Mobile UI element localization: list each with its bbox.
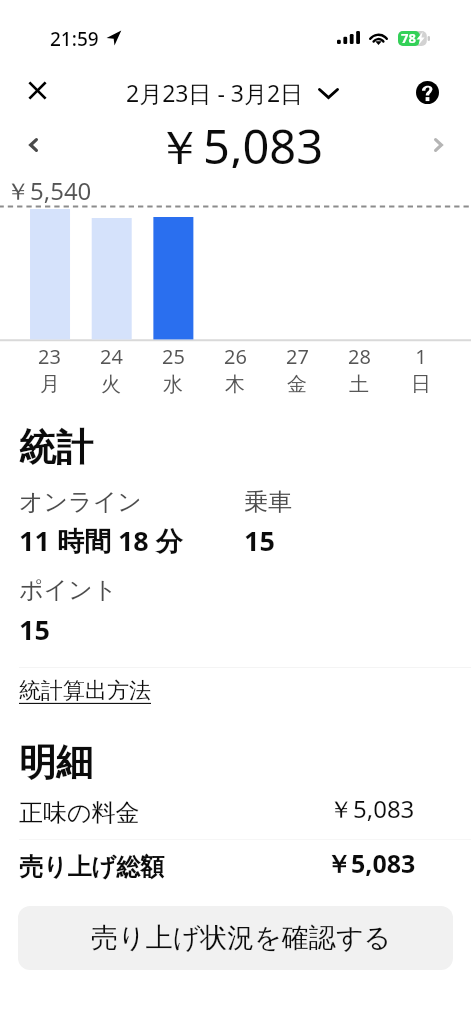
staticText: 25 bbox=[162, 343, 185, 370]
staticText: オンライン bbox=[19, 487, 142, 517]
staticText: 水 bbox=[163, 372, 183, 397]
staticText: 2月23日 - 3月2日 bbox=[126, 77, 304, 108]
staticText: 15 bbox=[19, 611, 50, 648]
staticText: ポイント bbox=[19, 575, 118, 605]
button[interactable]: 28 bbox=[328, 343, 390, 397]
button[interactable]: Previous week bbox=[14, 118, 52, 172]
staticText: 売り上げ総額 bbox=[19, 852, 165, 882]
staticText: ￥5,083 bbox=[326, 846, 416, 880]
button[interactable]: 23 bbox=[19, 343, 80, 397]
staticText: 正味の料金 bbox=[19, 798, 140, 828]
staticText: 23 bbox=[38, 343, 61, 370]
staticText: 78 bbox=[401, 29, 416, 47]
button[interactable]: 統計算出方法 bbox=[19, 677, 151, 705]
button[interactable]: 1 bbox=[390, 343, 452, 397]
staticText: 木 bbox=[225, 372, 245, 397]
staticText: 24 bbox=[100, 343, 123, 370]
button[interactable]: 2月23日 - 3月2日 bbox=[122, 71, 343, 114]
staticText: 月 bbox=[40, 372, 60, 397]
button[interactable]: Close bbox=[15, 68, 60, 113]
staticText: 明細 bbox=[19, 739, 93, 786]
staticText: ￥5,083 bbox=[156, 114, 324, 168]
button[interactable]: 27 bbox=[266, 343, 328, 397]
staticText: 21:59 bbox=[50, 26, 99, 52]
staticText: 土 bbox=[349, 372, 369, 397]
staticText: ￥5,540 bbox=[6, 174, 92, 207]
staticText: 売り上げ状況を確認する bbox=[91, 921, 392, 955]
staticText: 統計 bbox=[19, 424, 93, 471]
button[interactable]: Help bbox=[405, 70, 449, 114]
staticText: 金 bbox=[287, 372, 307, 397]
staticText: 1 bbox=[415, 343, 427, 370]
staticText: 15 bbox=[244, 522, 275, 559]
staticText: 27 bbox=[286, 343, 309, 370]
button[interactable]: 売り上げ状況を確認する bbox=[18, 906, 453, 970]
staticText: 26 bbox=[224, 343, 247, 370]
staticText: 火 bbox=[101, 372, 121, 397]
staticText: ￥5,083 bbox=[329, 792, 415, 825]
staticText: 乗車 bbox=[244, 487, 292, 517]
staticText: 28 bbox=[348, 343, 371, 370]
staticText: 11 時間 18 分 bbox=[19, 522, 183, 559]
button[interactable]: 26 bbox=[204, 343, 266, 397]
staticText: 日 bbox=[411, 372, 431, 397]
button[interactable]: Next week bbox=[419, 118, 457, 172]
button[interactable]: 24 bbox=[80, 343, 142, 397]
button[interactable]: 25 bbox=[142, 343, 204, 397]
